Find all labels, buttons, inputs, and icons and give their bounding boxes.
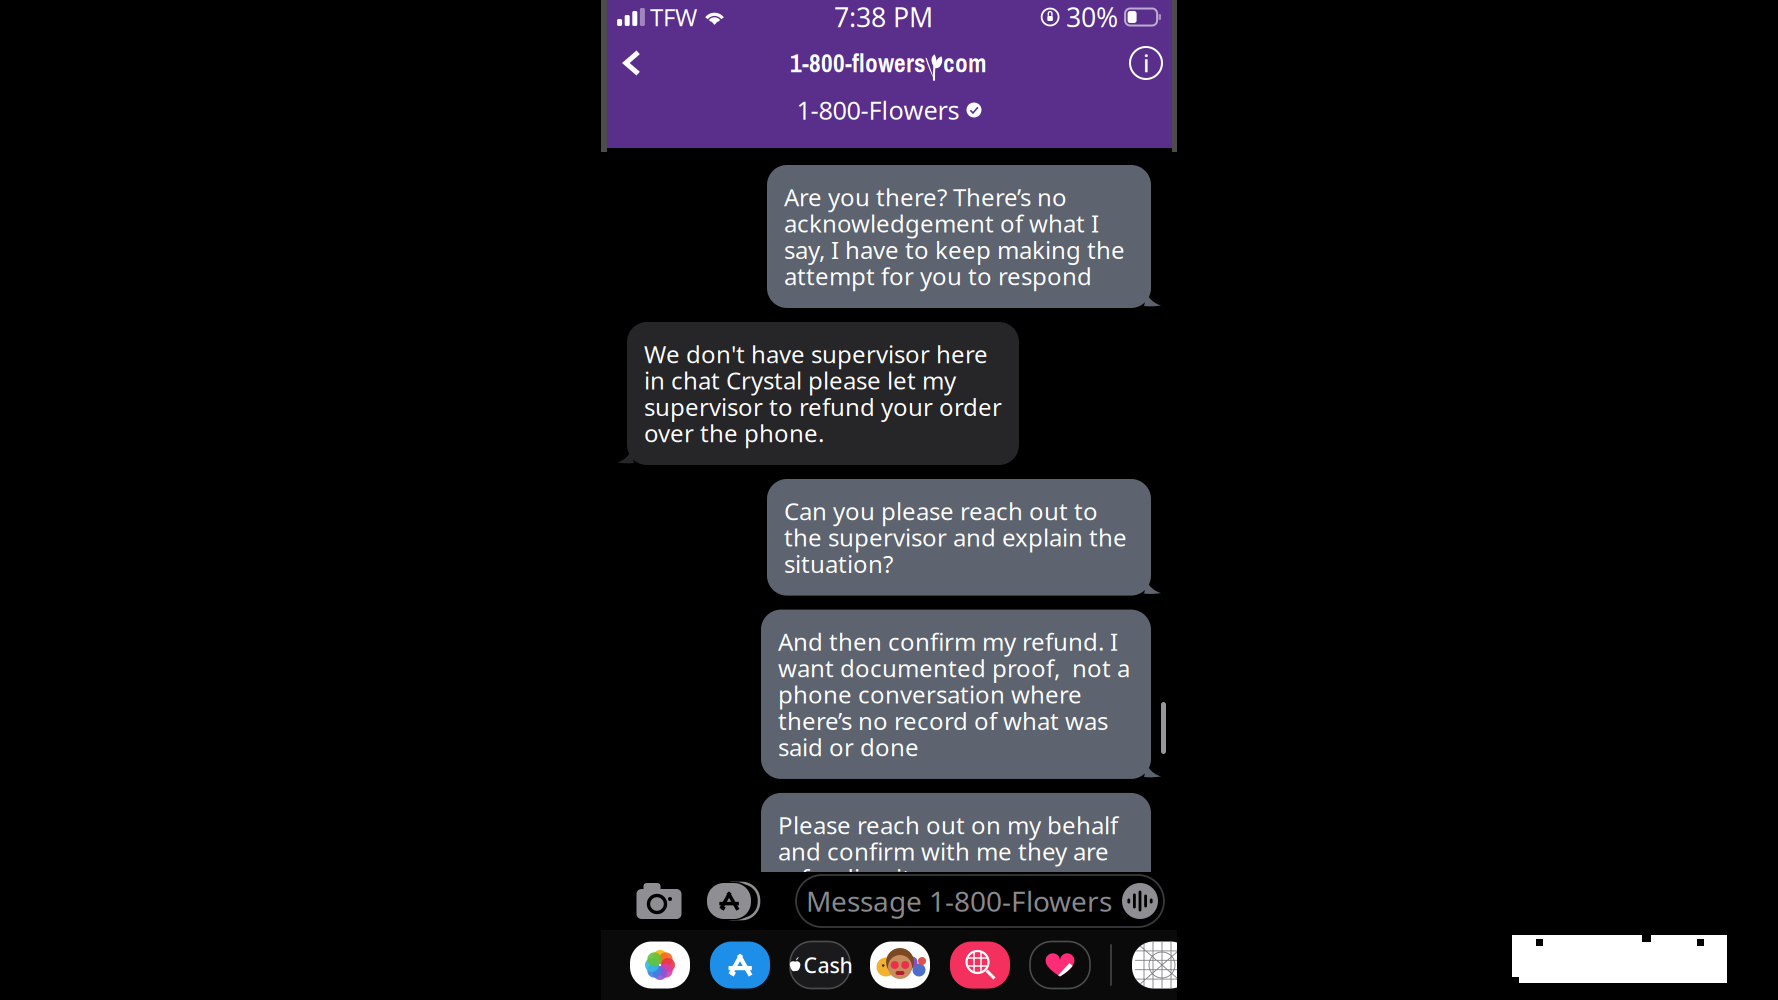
button[interactable]: More apps bbox=[1132, 941, 1192, 988]
button[interactable]: Photos bbox=[630, 941, 690, 988]
staticText: 1-800-flowers bbox=[790, 46, 926, 80]
staticText: 30% bbox=[1066, 0, 1118, 35]
staticText: 1-800-Flowers bbox=[796, 93, 959, 127]
button[interactable]: Apple Cash bbox=[790, 941, 850, 988]
staticText: And then confirm my refund. I want docum… bbox=[778, 626, 1130, 763]
button[interactable]: Back bbox=[601, 35, 663, 91]
button[interactable]: Details bbox=[1115, 35, 1177, 91]
staticText: com bbox=[943, 46, 986, 80]
staticText: Please reach out on my behalf and confir… bbox=[778, 809, 1118, 894]
button[interactable]: Memoji bbox=[870, 941, 930, 988]
button[interactable]: Images bbox=[950, 941, 1010, 988]
button[interactable]: Camera bbox=[628, 879, 690, 923]
button[interactable]: App Store bbox=[710, 941, 770, 988]
staticText: 7:38 PM bbox=[834, 0, 933, 35]
staticText: TFW bbox=[650, 1, 697, 33]
button[interactable]: Digital Touch bbox=[1030, 941, 1090, 988]
button[interactable]: Apps bbox=[701, 879, 757, 923]
staticText: Are you there? There’s no acknowledgemen… bbox=[784, 181, 1125, 292]
staticText: Can you please reach out to the supervis… bbox=[784, 495, 1127, 580]
staticText: Message 1-800-Flowers bbox=[806, 882, 1112, 920]
staticText: We don't have supervisor here in chat Cr… bbox=[644, 338, 1002, 449]
staticText: Cash bbox=[803, 951, 852, 979]
staticText: i bbox=[1143, 47, 1149, 79]
